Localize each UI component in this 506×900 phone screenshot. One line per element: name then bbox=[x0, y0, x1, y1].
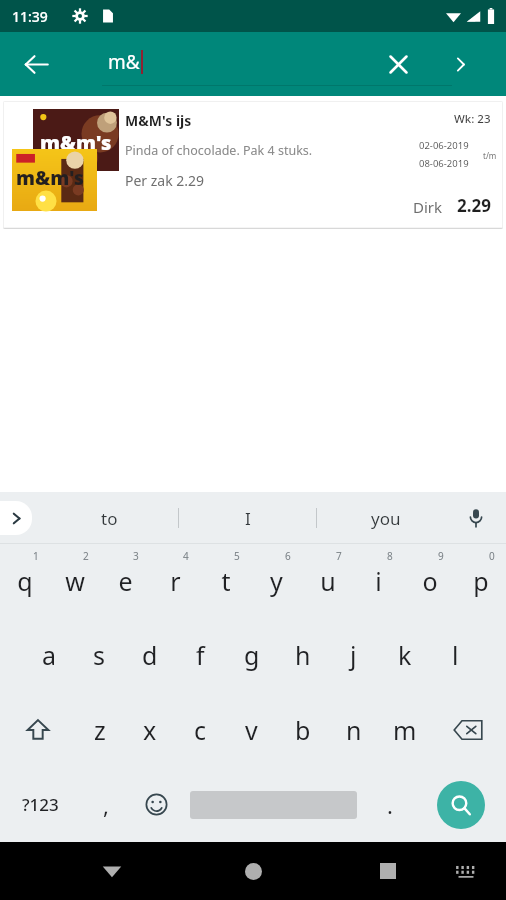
staticText: Dirk bbox=[413, 197, 443, 217]
staticText: 5 bbox=[234, 549, 240, 563]
staticText: 11:39 bbox=[12, 7, 48, 26]
staticText: o bbox=[422, 564, 438, 598]
staticText: i bbox=[375, 564, 382, 598]
staticText: s bbox=[93, 638, 105, 672]
staticText: M&M's ijs bbox=[125, 111, 192, 130]
button[interactable]: j bbox=[328, 618, 379, 692]
button[interactable]: w bbox=[50, 544, 100, 618]
button[interactable]: Clear query bbox=[374, 40, 422, 88]
button[interactable]: Search bbox=[415, 767, 506, 842]
staticText: 08-06-2019 bbox=[419, 157, 469, 170]
button[interactable]: u bbox=[302, 544, 353, 618]
staticText: c bbox=[194, 713, 207, 747]
button[interactable]: o bbox=[404, 544, 455, 618]
staticText: q bbox=[17, 564, 33, 598]
staticText: you bbox=[371, 507, 401, 530]
button[interactable]: ?123 bbox=[0, 767, 80, 842]
button[interactable]: a bbox=[24, 618, 74, 692]
staticText: 7 bbox=[336, 549, 342, 563]
staticText: f bbox=[196, 638, 205, 672]
button[interactable]: h bbox=[277, 618, 328, 692]
button[interactable]: Home bbox=[229, 847, 277, 895]
button[interactable]: m&m's bbox=[3, 101, 503, 229]
button[interactable]: you bbox=[317, 492, 454, 544]
button[interactable]: f bbox=[175, 618, 226, 692]
staticText: 2 bbox=[83, 549, 89, 563]
staticText: 2.29 bbox=[457, 194, 491, 217]
staticText: I bbox=[245, 507, 251, 530]
staticText: w bbox=[65, 564, 85, 598]
button[interactable]: d bbox=[124, 618, 175, 692]
staticText: t/m bbox=[483, 150, 497, 161]
button[interactable]: Switch keyboard bbox=[446, 851, 486, 891]
button[interactable]: t bbox=[200, 544, 251, 618]
staticText: m& bbox=[108, 49, 140, 75]
staticText: 0 bbox=[489, 549, 495, 563]
button[interactable]: Search bbox=[436, 40, 484, 88]
staticText: u bbox=[320, 564, 336, 598]
staticText: m&m's bbox=[16, 165, 84, 191]
staticText: j bbox=[350, 638, 357, 672]
button[interactable] bbox=[182, 767, 364, 842]
staticText: 9 bbox=[438, 549, 444, 563]
staticText: 3 bbox=[133, 549, 139, 563]
button[interactable]: v bbox=[226, 692, 277, 767]
button[interactable]: y bbox=[251, 544, 302, 618]
staticText: t bbox=[221, 564, 231, 598]
button[interactable]: Emoji bbox=[131, 767, 182, 842]
button[interactable]: m bbox=[379, 692, 430, 767]
staticText: 02-06-2019 bbox=[419, 139, 469, 152]
button[interactable]: n bbox=[328, 692, 379, 767]
staticText: 1 bbox=[33, 549, 39, 563]
button[interactable]: Shift bbox=[0, 692, 75, 767]
button[interactable]: k bbox=[379, 618, 430, 692]
staticText: v bbox=[245, 713, 258, 747]
staticText: n bbox=[346, 713, 362, 747]
staticText: Wk: 23 bbox=[454, 111, 491, 127]
staticText: to bbox=[101, 507, 118, 530]
button[interactable]: Voice input bbox=[458, 500, 494, 536]
staticText: z bbox=[94, 713, 106, 747]
staticText: h bbox=[295, 638, 311, 672]
staticText: 4 bbox=[183, 549, 189, 563]
button[interactable]: z bbox=[75, 692, 125, 767]
button[interactable]: i bbox=[353, 544, 404, 618]
staticText: m bbox=[393, 713, 417, 747]
button[interactable]: Expand toolbar bbox=[0, 501, 32, 535]
staticText: p bbox=[473, 564, 489, 598]
button[interactable]: . bbox=[364, 767, 415, 842]
button[interactable]: Backspace bbox=[430, 692, 506, 767]
staticText: , bbox=[103, 790, 109, 820]
staticText: 6 bbox=[285, 549, 291, 563]
button[interactable]: e bbox=[100, 544, 150, 618]
button[interactable]: Recents bbox=[364, 847, 412, 895]
button[interactable]: r bbox=[150, 544, 200, 618]
staticText: e bbox=[118, 564, 133, 598]
button[interactable]: I bbox=[179, 492, 316, 544]
staticText: r bbox=[170, 564, 181, 598]
button[interactable]: Back bbox=[10, 38, 62, 90]
button[interactable]: l bbox=[430, 618, 481, 692]
staticText: 8 bbox=[387, 549, 393, 563]
staticText: Pinda of chocolade. Pak 4 stuks. bbox=[125, 142, 313, 159]
button[interactable]: x bbox=[125, 692, 175, 767]
button[interactable]: s bbox=[74, 618, 124, 692]
button[interactable]: Hide keyboard bbox=[88, 847, 136, 895]
button[interactable]: g bbox=[226, 618, 277, 692]
button[interactable]: c bbox=[175, 692, 226, 767]
button[interactable]: , bbox=[80, 767, 131, 842]
staticText: m&m's bbox=[40, 129, 112, 156]
staticText: k bbox=[398, 638, 412, 672]
button[interactable]: b bbox=[277, 692, 328, 767]
staticText: y bbox=[270, 564, 283, 598]
staticText: g bbox=[244, 638, 260, 672]
button[interactable]: to bbox=[40, 492, 178, 544]
staticText: Per zak 2.29 bbox=[125, 171, 205, 190]
staticText: a bbox=[42, 638, 57, 672]
staticText: ?123 bbox=[22, 793, 59, 816]
button[interactable]: q bbox=[0, 544, 50, 618]
staticText: b bbox=[295, 713, 311, 747]
staticText: x bbox=[143, 713, 157, 747]
staticText: l bbox=[452, 638, 459, 672]
button[interactable]: p bbox=[455, 544, 506, 618]
